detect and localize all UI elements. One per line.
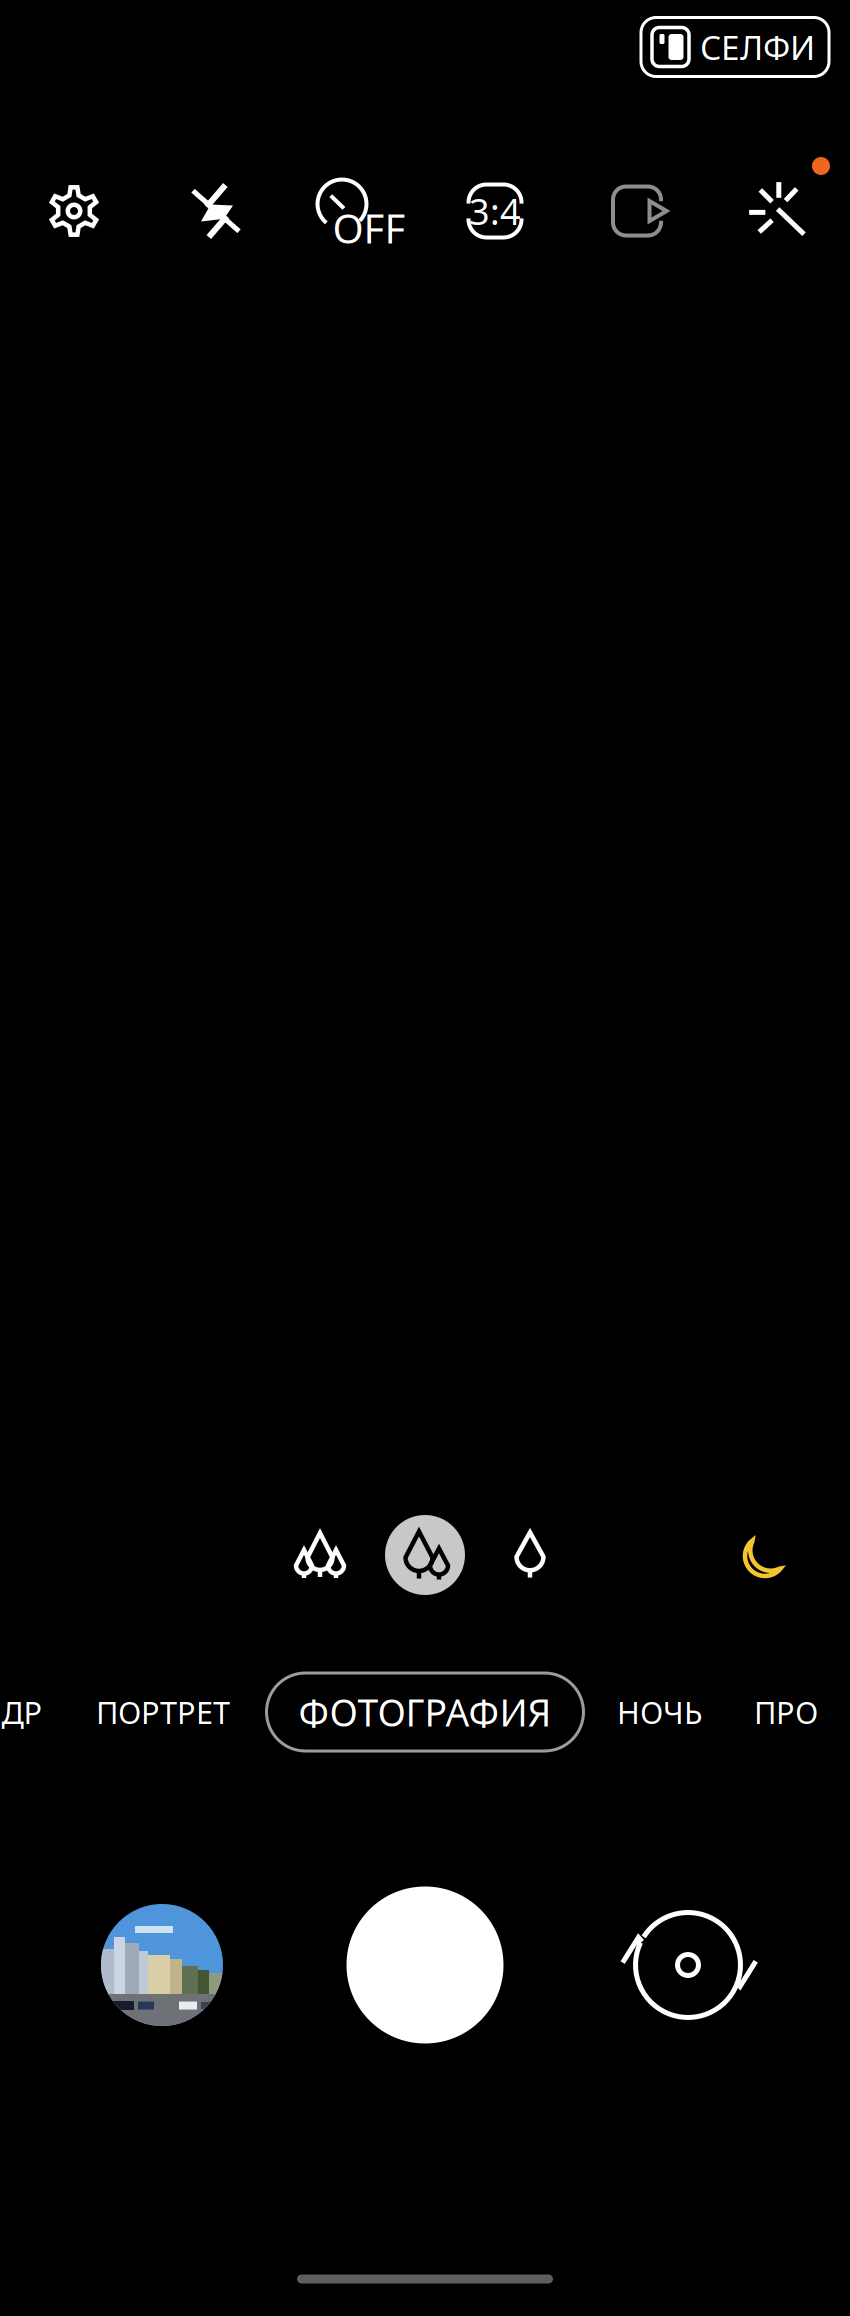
staticText: ФОТОГРАФИЯ: [298, 1687, 551, 1737]
button[interactable]: Ultra wide: [274, 1509, 366, 1601]
button[interactable]: Switch camera: [613, 1890, 763, 2040]
staticText: ДР: [1, 1692, 42, 1732]
staticText: OFF: [332, 201, 405, 254]
button[interactable]: Take photo: [335, 1875, 515, 2055]
button[interactable]: Gallery: [87, 1890, 237, 2040]
button[interactable]: Telephoto: [484, 1509, 576, 1601]
button[interactable]: Flash off: [161, 163, 271, 259]
button[interactable]: ПОРТРЕТ: [96, 1674, 230, 1750]
button[interactable]: Filters: [725, 163, 835, 259]
button[interactable]: Settings: [19, 163, 129, 259]
button[interactable]: ПРО: [754, 1674, 818, 1750]
button[interactable]: Timer off: [296, 163, 414, 259]
staticText: НОЧЬ: [617, 1692, 703, 1732]
button[interactable]: НОЧЬ: [617, 1674, 703, 1750]
staticText: ПОРТРЕТ: [96, 1692, 230, 1732]
staticText: 3:4: [469, 187, 521, 235]
staticText: СЕЛФИ: [700, 25, 815, 69]
button[interactable]: Wide: [379, 1509, 471, 1601]
staticText: ПРО: [754, 1692, 818, 1732]
button[interactable]: ДР: [1, 1674, 42, 1750]
button[interactable]: Motion photo: [582, 163, 692, 259]
button[interactable]: ФОТОГРАФИЯ: [266, 1673, 583, 1751]
button[interactable]: СЕЛФИ: [641, 17, 829, 76]
button[interactable]: Aspect ratio 3 by 4: [440, 163, 550, 259]
button[interactable]: Night mode: [719, 1510, 811, 1602]
